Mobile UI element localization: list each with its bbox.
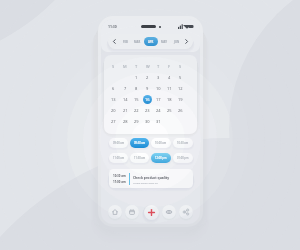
button[interactable]: 30 <box>143 117 152 126</box>
button[interactable]: 6 <box>109 84 118 93</box>
button[interactable]: 22 <box>132 106 141 115</box>
staticText: 01:00 pm <box>177 156 189 160</box>
staticText: 14 <box>123 97 128 102</box>
staticText: 23 <box>145 108 150 113</box>
button[interactable]: FEB <box>119 37 131 46</box>
staticText: 25 <box>167 108 172 113</box>
staticText: 10:30 am <box>113 174 126 178</box>
staticText: 11:30 <box>108 24 117 29</box>
staticText: 09:30 am <box>134 141 146 145</box>
staticText: 09:00 am <box>113 141 125 145</box>
button[interactable]: 8 <box>132 84 141 93</box>
staticText: 26 <box>178 108 183 113</box>
button[interactable]: Previous month <box>111 38 118 45</box>
button[interactable]: 17 <box>154 95 163 104</box>
staticText: 30 <box>145 119 150 124</box>
button[interactable]: 12:00 pm <box>151 153 171 163</box>
staticText: 27 <box>111 119 116 124</box>
staticText: MAY <box>161 40 167 44</box>
button[interactable]: Home <box>108 205 122 219</box>
staticText: T <box>135 64 138 69</box>
staticText: 1 <box>135 75 138 80</box>
button[interactable]: 23 <box>143 106 152 115</box>
staticText: 29 <box>134 119 139 124</box>
staticText: 5 <box>179 75 182 80</box>
staticText: Check product quality <box>133 175 170 179</box>
staticText: 12 <box>178 86 183 91</box>
button[interactable]: 25 <box>165 106 174 115</box>
staticText: 19 <box>178 97 183 102</box>
button[interactable]: 24 <box>154 106 163 115</box>
button[interactable]: JUN <box>171 37 183 46</box>
staticText: T <box>157 64 160 69</box>
button[interactable]: 10:00 am <box>151 138 171 148</box>
button[interactable]: 11:00 am <box>109 153 128 163</box>
button[interactable]: 5 <box>176 73 185 82</box>
staticText: 20 <box>111 108 116 113</box>
staticText: 12:00 pm <box>155 156 167 160</box>
button[interactable]: 21 <box>121 106 130 115</box>
button[interactable]: 20 <box>109 106 118 115</box>
button[interactable]: 11 <box>165 84 174 93</box>
button[interactable]: Photos <box>162 205 176 219</box>
staticText: 31 <box>156 119 161 124</box>
button[interactable]: 09:00 am <box>109 138 128 148</box>
staticText: JUN <box>174 40 180 44</box>
button[interactable]: 31 <box>154 117 163 126</box>
staticText: M <box>123 64 127 69</box>
button[interactable]: MAY <box>158 37 170 46</box>
staticText: S <box>179 64 182 69</box>
staticText: 6 <box>112 86 115 91</box>
staticText: 16 <box>145 97 150 102</box>
button[interactable]: 1 <box>132 73 141 82</box>
button[interactable]: APR <box>144 37 158 46</box>
button[interactable]: Share <box>179 205 193 219</box>
button[interactable]: 19 <box>176 95 185 104</box>
staticText: W <box>146 64 150 69</box>
button[interactable]: 28 <box>121 117 130 126</box>
staticText: 22 <box>134 108 139 113</box>
staticText: F <box>168 64 171 69</box>
button[interactable]: 11:30 am <box>130 153 149 163</box>
staticText: APR <box>148 40 154 44</box>
button[interactable]: 15 <box>132 95 141 104</box>
staticText: FEB <box>123 40 128 44</box>
staticText: MAR <box>134 40 141 44</box>
staticText: 10:30 am <box>177 141 189 145</box>
staticText: S <box>112 64 115 69</box>
button[interactable]: 01:00 pm <box>173 153 193 163</box>
button[interactable]: 29 <box>132 117 141 126</box>
button[interactable]: 26 <box>176 106 185 115</box>
staticText: 10 <box>156 86 161 91</box>
button[interactable]: Add event <box>144 205 159 220</box>
staticText: 10:00 am <box>155 141 167 145</box>
staticText: 18 <box>167 97 172 102</box>
button[interactable]: 12 <box>176 84 185 93</box>
button[interactable]: 4 <box>165 73 174 82</box>
staticText: 17 <box>156 97 161 102</box>
staticText: 7 <box>124 86 127 91</box>
staticText: 11:00 am <box>113 156 125 160</box>
button[interactable]: 14 <box>121 95 130 104</box>
staticText: 13 <box>111 97 116 102</box>
staticText: 8 <box>135 86 138 91</box>
button[interactable]: Next month <box>183 38 190 45</box>
staticText: 3 <box>157 75 160 80</box>
button[interactable]: 18 <box>165 95 174 104</box>
staticText: 28 <box>123 119 128 124</box>
button[interactable]: 27 <box>109 117 118 126</box>
button[interactable]: 3 <box>154 73 163 82</box>
button[interactable]: 13 <box>109 95 118 104</box>
button[interactable]: 16 <box>143 95 152 104</box>
staticText: 24 <box>156 108 161 113</box>
button[interactable]: 9 <box>143 84 152 93</box>
button[interactable]: Calendar <box>125 205 139 219</box>
button[interactable]: 10:30 am <box>109 169 193 188</box>
button[interactable]: 7 <box>121 84 130 93</box>
button[interactable]: MAR <box>131 37 143 46</box>
button[interactable]: 10 <box>154 84 163 93</box>
button[interactable]: 10:30 am <box>173 138 193 148</box>
button[interactable]: 2 <box>143 73 152 82</box>
button[interactable]: 09:30 am <box>130 138 149 148</box>
staticText: 15 <box>134 97 139 102</box>
